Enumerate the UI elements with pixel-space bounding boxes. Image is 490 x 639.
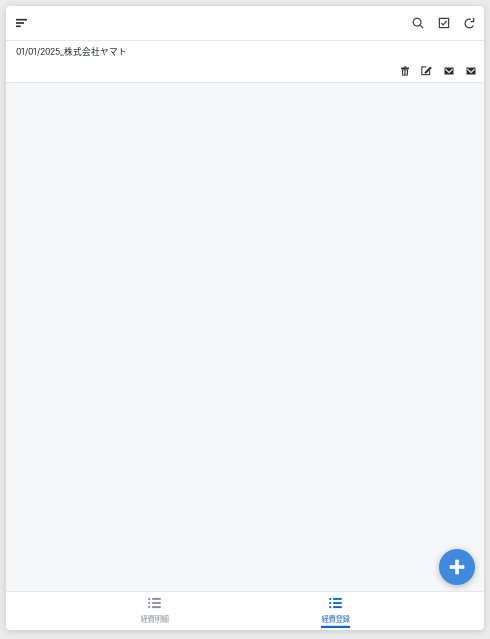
- staticText: 01/01/2025_株式会社ヤマト: [16, 45, 127, 57]
- button[interactable]: Refresh: [457, 6, 483, 40]
- button[interactable]: Search: [405, 6, 431, 40]
- staticText: 経費明細: [140, 613, 168, 624]
- staticText: 経費登録: [321, 613, 349, 624]
- button[interactable]: 経費登録: [293, 592, 378, 630]
- button[interactable]: Sort: [6, 6, 42, 40]
- button[interactable]: Select: [431, 6, 457, 40]
- button[interactable]: Edit: [416, 64, 438, 78]
- button[interactable]: Add: [439, 549, 475, 585]
- button[interactable]: 経費明細: [112, 592, 197, 630]
- button[interactable]: Forward mail: [460, 64, 482, 78]
- button[interactable]: Send mail: [438, 64, 460, 78]
- button[interactable]: Delete: [394, 64, 416, 78]
